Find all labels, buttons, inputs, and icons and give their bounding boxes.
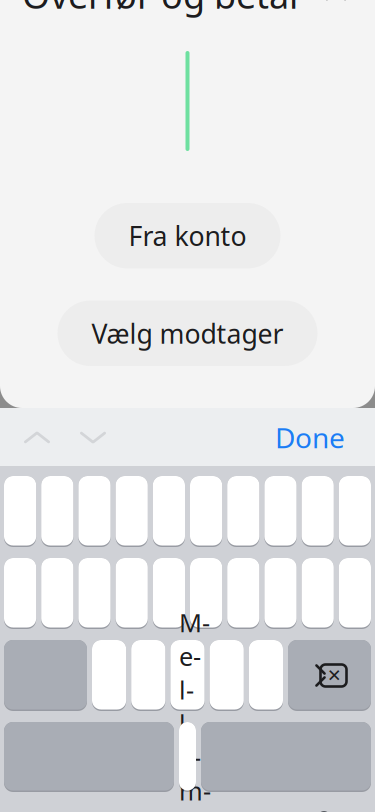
button[interactable]: @: [302, 558, 334, 629]
button[interactable]: 0: [339, 476, 371, 547]
button[interactable]: Dictation: [307, 810, 341, 812]
button[interactable]: 5: [153, 476, 185, 547]
button[interactable]: ,: [131, 640, 165, 711]
button[interactable]: Mellemrum: [179, 722, 196, 792]
button[interactable]: ”: [339, 558, 371, 629]
button[interactable]: ?: [170, 640, 205, 711]
button[interactable]: Vælg modtager: [57, 301, 317, 366]
button[interactable]: ;: [116, 558, 148, 629]
button[interactable]: /: [41, 558, 73, 629]
button[interactable]: :: [78, 558, 111, 629]
button[interactable]: Previous field: [22, 426, 52, 448]
button[interactable]: ’: [249, 640, 283, 711]
button[interactable]: 2: [41, 476, 73, 547]
button[interactable]: ABC: [4, 722, 174, 792]
staticText: Fra konto: [128, 218, 246, 253]
button[interactable]: 3: [78, 476, 111, 547]
staticText: Vælg modtager: [91, 316, 283, 351]
button[interactable]: 7: [227, 476, 259, 547]
button[interactable]: #+=: [4, 640, 87, 711]
button[interactable]: Done: [257, 411, 363, 464]
button[interactable]: !: [210, 640, 244, 711]
button[interactable]: (: [153, 558, 185, 629]
button[interactable]: Delete: [288, 640, 371, 711]
button[interactable]: 9: [302, 476, 334, 547]
button[interactable]: 8: [264, 476, 297, 547]
button[interactable]: Retur: [201, 722, 371, 792]
button[interactable]: ): [190, 558, 222, 629]
button[interactable]: &: [264, 558, 297, 629]
staticText: ✕: [327, 666, 342, 685]
button[interactable]: Close: [319, 0, 353, 7]
button[interactable]: Next field: [78, 426, 108, 448]
button[interactable]: -: [4, 558, 36, 629]
button[interactable]: 1: [4, 476, 36, 547]
staticText: Done: [275, 419, 345, 456]
button[interactable]: 4: [116, 476, 148, 547]
staticText: ?: [180, 653, 194, 698]
staticText: Overfør og betal: [22, 0, 298, 19]
button[interactable]: Fra konto: [94, 203, 280, 268]
button[interactable]: 6: [190, 476, 222, 547]
button[interactable]: kr: [227, 558, 259, 629]
staticText: Mellemrum: [179, 606, 196, 812]
button[interactable]: .: [92, 640, 126, 711]
